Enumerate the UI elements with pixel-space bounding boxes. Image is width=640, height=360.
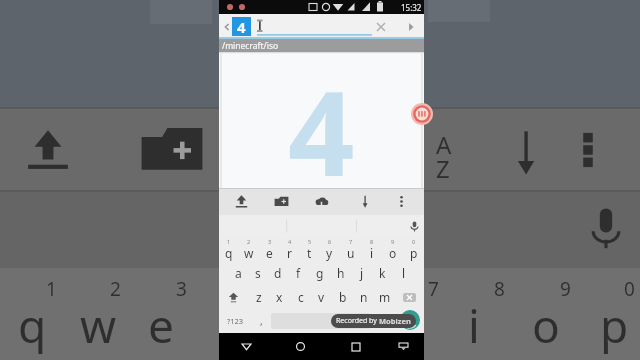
button[interactable]: /minecraft/iso bbox=[219, 39, 424, 52]
staticText: Recorded by bbox=[336, 316, 379, 326]
button[interactable]: Clear bbox=[372, 18, 390, 36]
button[interactable]: 2 bbox=[239, 237, 259, 261]
button[interactable]: 4 bbox=[279, 237, 299, 261]
button[interactable]: Sort A to Z bbox=[341, 188, 381, 215]
staticText: 1 bbox=[46, 276, 57, 302]
staticText: A bbox=[436, 128, 452, 161]
button[interactable]: Back bbox=[221, 16, 232, 38]
button[interactable]: c bbox=[290, 285, 311, 309]
button[interactable]: Recent apps bbox=[328, 333, 383, 360]
staticText: 15:32 bbox=[401, 2, 422, 13]
staticText: v bbox=[318, 289, 325, 305]
staticText: o bbox=[532, 294, 560, 357]
staticText: o bbox=[389, 245, 397, 261]
button[interactable]: New folder bbox=[261, 188, 301, 215]
staticText: j bbox=[360, 265, 364, 281]
button[interactable]: Space bbox=[271, 313, 370, 329]
staticText: y bbox=[326, 245, 333, 261]
button[interactable] bbox=[257, 14, 372, 39]
staticText: Z bbox=[436, 152, 450, 185]
button[interactable]: Back bbox=[219, 333, 273, 360]
button[interactable]: Voice input bbox=[404, 216, 424, 236]
button[interactable]: f bbox=[288, 261, 309, 285]
button[interactable]: s bbox=[248, 261, 268, 285]
staticText: 9 bbox=[560, 276, 571, 302]
button[interactable]: m bbox=[374, 285, 395, 309]
staticText: a bbox=[235, 265, 242, 281]
button[interactable]: 5 bbox=[299, 237, 319, 261]
staticText: 4 bbox=[288, 238, 292, 245]
button[interactable]: z bbox=[248, 285, 269, 309]
staticText: q bbox=[18, 294, 47, 357]
button[interactable]: n bbox=[353, 285, 374, 309]
button[interactable]: v bbox=[311, 285, 332, 309]
button[interactable]: Mobizen recorder bbox=[400, 310, 420, 330]
staticText: g bbox=[316, 265, 324, 281]
button[interactable]: 1 bbox=[219, 237, 239, 261]
staticText: l bbox=[402, 265, 406, 281]
button[interactable]: j bbox=[351, 261, 372, 285]
button[interactable]: Backspace bbox=[395, 285, 424, 309]
staticText: 8 bbox=[494, 276, 505, 302]
staticText: w bbox=[80, 294, 117, 357]
button[interactable]: Home bbox=[273, 333, 328, 360]
staticText: 3 bbox=[176, 276, 187, 302]
staticText: c bbox=[298, 289, 304, 305]
button[interactable]: Search bbox=[402, 18, 420, 36]
button[interactable]: Enter bbox=[390, 309, 424, 333]
staticText: w bbox=[244, 245, 254, 261]
staticText: m bbox=[379, 289, 391, 305]
staticText: 6 bbox=[328, 238, 332, 245]
staticText: 8 bbox=[370, 238, 374, 245]
staticText: 7 bbox=[349, 238, 353, 245]
button[interactable]: Upload bbox=[222, 188, 261, 215]
button[interactable]: Cloud bbox=[301, 188, 341, 215]
button[interactable]: 8 bbox=[361, 237, 382, 261]
staticText: x bbox=[276, 289, 283, 305]
button[interactable]: x bbox=[269, 285, 290, 309]
staticText: 0 bbox=[624, 276, 635, 302]
button[interactable]: d bbox=[268, 261, 288, 285]
staticText: r bbox=[287, 245, 292, 261]
staticText: q bbox=[225, 245, 233, 261]
staticText: , bbox=[260, 314, 263, 328]
staticText: b bbox=[339, 289, 347, 305]
staticText: p bbox=[410, 245, 418, 261]
button[interactable]: 9 bbox=[382, 237, 403, 261]
button[interactable]: h bbox=[330, 261, 351, 285]
button[interactable]: 4shared bbox=[232, 17, 251, 36]
staticText: 0 bbox=[412, 238, 416, 245]
button[interactable]: Hide keyboard bbox=[383, 333, 424, 360]
button[interactable]: b bbox=[332, 285, 353, 309]
staticText: e bbox=[148, 294, 174, 357]
button[interactable]: 0 bbox=[403, 237, 424, 261]
staticText: 4 bbox=[288, 52, 355, 188]
staticText: h bbox=[337, 265, 345, 281]
staticText: d bbox=[274, 265, 282, 281]
staticText: i bbox=[370, 245, 374, 261]
button[interactable]: 3 bbox=[259, 237, 279, 261]
button[interactable]: ?123 bbox=[219, 309, 252, 333]
staticText: e bbox=[266, 245, 273, 261]
button[interactable]: . bbox=[370, 309, 390, 333]
staticText: 5 bbox=[308, 238, 312, 245]
staticText: 2 bbox=[247, 238, 251, 245]
staticText: k bbox=[379, 265, 386, 281]
button[interactable]: l bbox=[393, 261, 414, 285]
button[interactable]: k bbox=[372, 261, 393, 285]
button[interactable]: , bbox=[252, 309, 271, 333]
staticText: n bbox=[360, 289, 368, 305]
staticText: ?123 bbox=[227, 316, 244, 326]
button[interactable]: a bbox=[228, 261, 248, 285]
button[interactable]: g bbox=[309, 261, 330, 285]
staticText: Mobizen bbox=[379, 316, 411, 326]
staticText: 9 bbox=[391, 238, 395, 245]
button[interactable]: 6 bbox=[319, 237, 340, 261]
staticText: 4 bbox=[237, 17, 246, 36]
button[interactable]: Shift bbox=[219, 285, 248, 309]
staticText: p bbox=[600, 294, 629, 357]
button[interactable]: More options bbox=[381, 188, 421, 215]
staticText: u bbox=[347, 245, 355, 261]
staticText: 7 bbox=[428, 276, 439, 302]
button[interactable]: 7 bbox=[340, 237, 361, 261]
